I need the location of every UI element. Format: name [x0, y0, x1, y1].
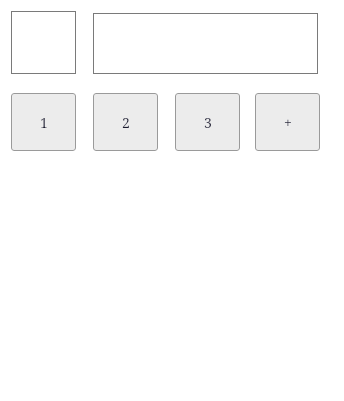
button[interactable]: Memory display	[11, 11, 76, 74]
button[interactable]: 2	[93, 93, 158, 151]
button[interactable]: 1	[11, 93, 76, 151]
staticText: 3	[204, 113, 212, 132]
button[interactable]: Result display	[93, 13, 318, 74]
button[interactable]: 3	[175, 93, 240, 151]
button[interactable]: Plus	[255, 93, 320, 151]
staticText: 1	[40, 113, 48, 132]
staticText: +	[284, 113, 292, 132]
staticText: 2	[122, 113, 130, 132]
